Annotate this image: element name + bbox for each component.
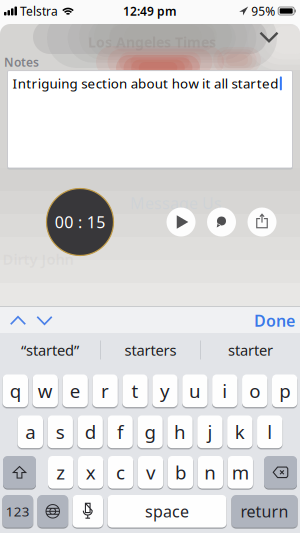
- staticText: u: [189, 378, 201, 403]
- button[interactable]: return: [231, 495, 297, 528]
- button[interactable]: [5, 311, 31, 330]
- staticText: e: [70, 378, 81, 403]
- staticText: return: [240, 501, 288, 522]
- button[interactable]: c: [108, 456, 133, 489]
- button[interactable]: Done: [248, 304, 300, 337]
- button[interactable]: w: [32, 374, 58, 407]
- staticText: 12:49 pm: [123, 3, 177, 19]
- staticText: m: [232, 460, 249, 485]
- button[interactable]: e: [62, 374, 88, 407]
- button[interactable]: 123: [2, 495, 33, 528]
- staticText: “started”: [21, 340, 79, 360]
- button[interactable]: k: [227, 415, 252, 448]
- staticText: n: [204, 460, 216, 485]
- staticText: Los Angeles Times: [88, 32, 216, 52]
- staticText: 123: [6, 502, 30, 520]
- staticText: p: [279, 378, 290, 403]
- button[interactable]: g: [137, 415, 163, 448]
- button[interactable]: d: [77, 415, 103, 448]
- button[interactable]: m: [228, 456, 253, 489]
- button[interactable]: y: [152, 374, 178, 407]
- button[interactable]: l: [257, 415, 282, 448]
- button[interactable]: o: [242, 374, 267, 407]
- staticText: w: [38, 378, 53, 403]
- staticText: o: [249, 378, 260, 403]
- staticText: Intriguing section about how it all star…: [12, 74, 278, 92]
- staticText: k: [235, 419, 245, 444]
- button[interactable]: p: [272, 374, 297, 407]
- button[interactable]: [3, 456, 36, 489]
- staticText: s: [56, 419, 65, 444]
- button[interactable]: [72, 495, 103, 528]
- staticText: r: [101, 378, 109, 403]
- button[interactable]: h: [167, 415, 193, 448]
- button[interactable]: r: [92, 374, 118, 407]
- staticText: q: [10, 378, 21, 403]
- button[interactable]: t: [122, 374, 148, 407]
- staticText: x: [86, 460, 96, 485]
- staticText: Dirty John: [2, 249, 73, 269]
- button[interactable]: [166, 207, 195, 236]
- button[interactable]: [264, 456, 297, 489]
- staticText: Done: [254, 310, 295, 331]
- staticText: l: [267, 419, 272, 444]
- button[interactable]: [37, 495, 68, 528]
- button[interactable]: i: [212, 374, 237, 407]
- staticText: d: [85, 419, 96, 444]
- staticText: y: [160, 378, 170, 403]
- staticText: a: [25, 419, 35, 444]
- button[interactable]: u: [182, 374, 208, 407]
- staticText: space: [145, 501, 189, 522]
- button[interactable]: s: [47, 415, 73, 448]
- staticText: 95%: [251, 3, 275, 19]
- button[interactable]: space: [107, 495, 226, 528]
- staticText: Telstra: [20, 3, 58, 19]
- button[interactable]: [207, 207, 236, 236]
- staticText: i: [222, 378, 227, 403]
- staticText: Notes: [4, 54, 39, 70]
- button[interactable]: x: [78, 456, 103, 489]
- staticText: t: [131, 378, 138, 403]
- button[interactable]: “started”: [0, 334, 100, 366]
- button[interactable]: [252, 25, 285, 49]
- staticText: z: [56, 460, 65, 485]
- staticText: j: [207, 419, 212, 444]
- staticText: f: [117, 419, 123, 444]
- button[interactable]: q: [3, 374, 28, 407]
- staticText: 00 : 15: [55, 211, 105, 233]
- staticText: starter: [228, 340, 273, 360]
- staticText: starters: [124, 340, 176, 360]
- button[interactable]: f: [107, 415, 133, 448]
- button[interactable]: n: [198, 456, 223, 489]
- button[interactable]: [247, 207, 276, 236]
- staticText: v: [146, 460, 155, 485]
- button[interactable]: j: [197, 415, 223, 448]
- button[interactable]: starter: [201, 334, 300, 366]
- staticText: Message Us: [130, 192, 222, 214]
- button[interactable]: b: [168, 456, 193, 489]
- staticText: c: [116, 460, 125, 485]
- staticText: h: [174, 419, 186, 444]
- staticText: b: [175, 460, 186, 485]
- staticText: g: [144, 419, 155, 444]
- button[interactable]: z: [48, 456, 73, 489]
- button[interactable]: v: [138, 456, 163, 489]
- button[interactable]: starters: [101, 334, 200, 366]
- button[interactable]: a: [18, 415, 43, 448]
- button[interactable]: [31, 311, 58, 330]
